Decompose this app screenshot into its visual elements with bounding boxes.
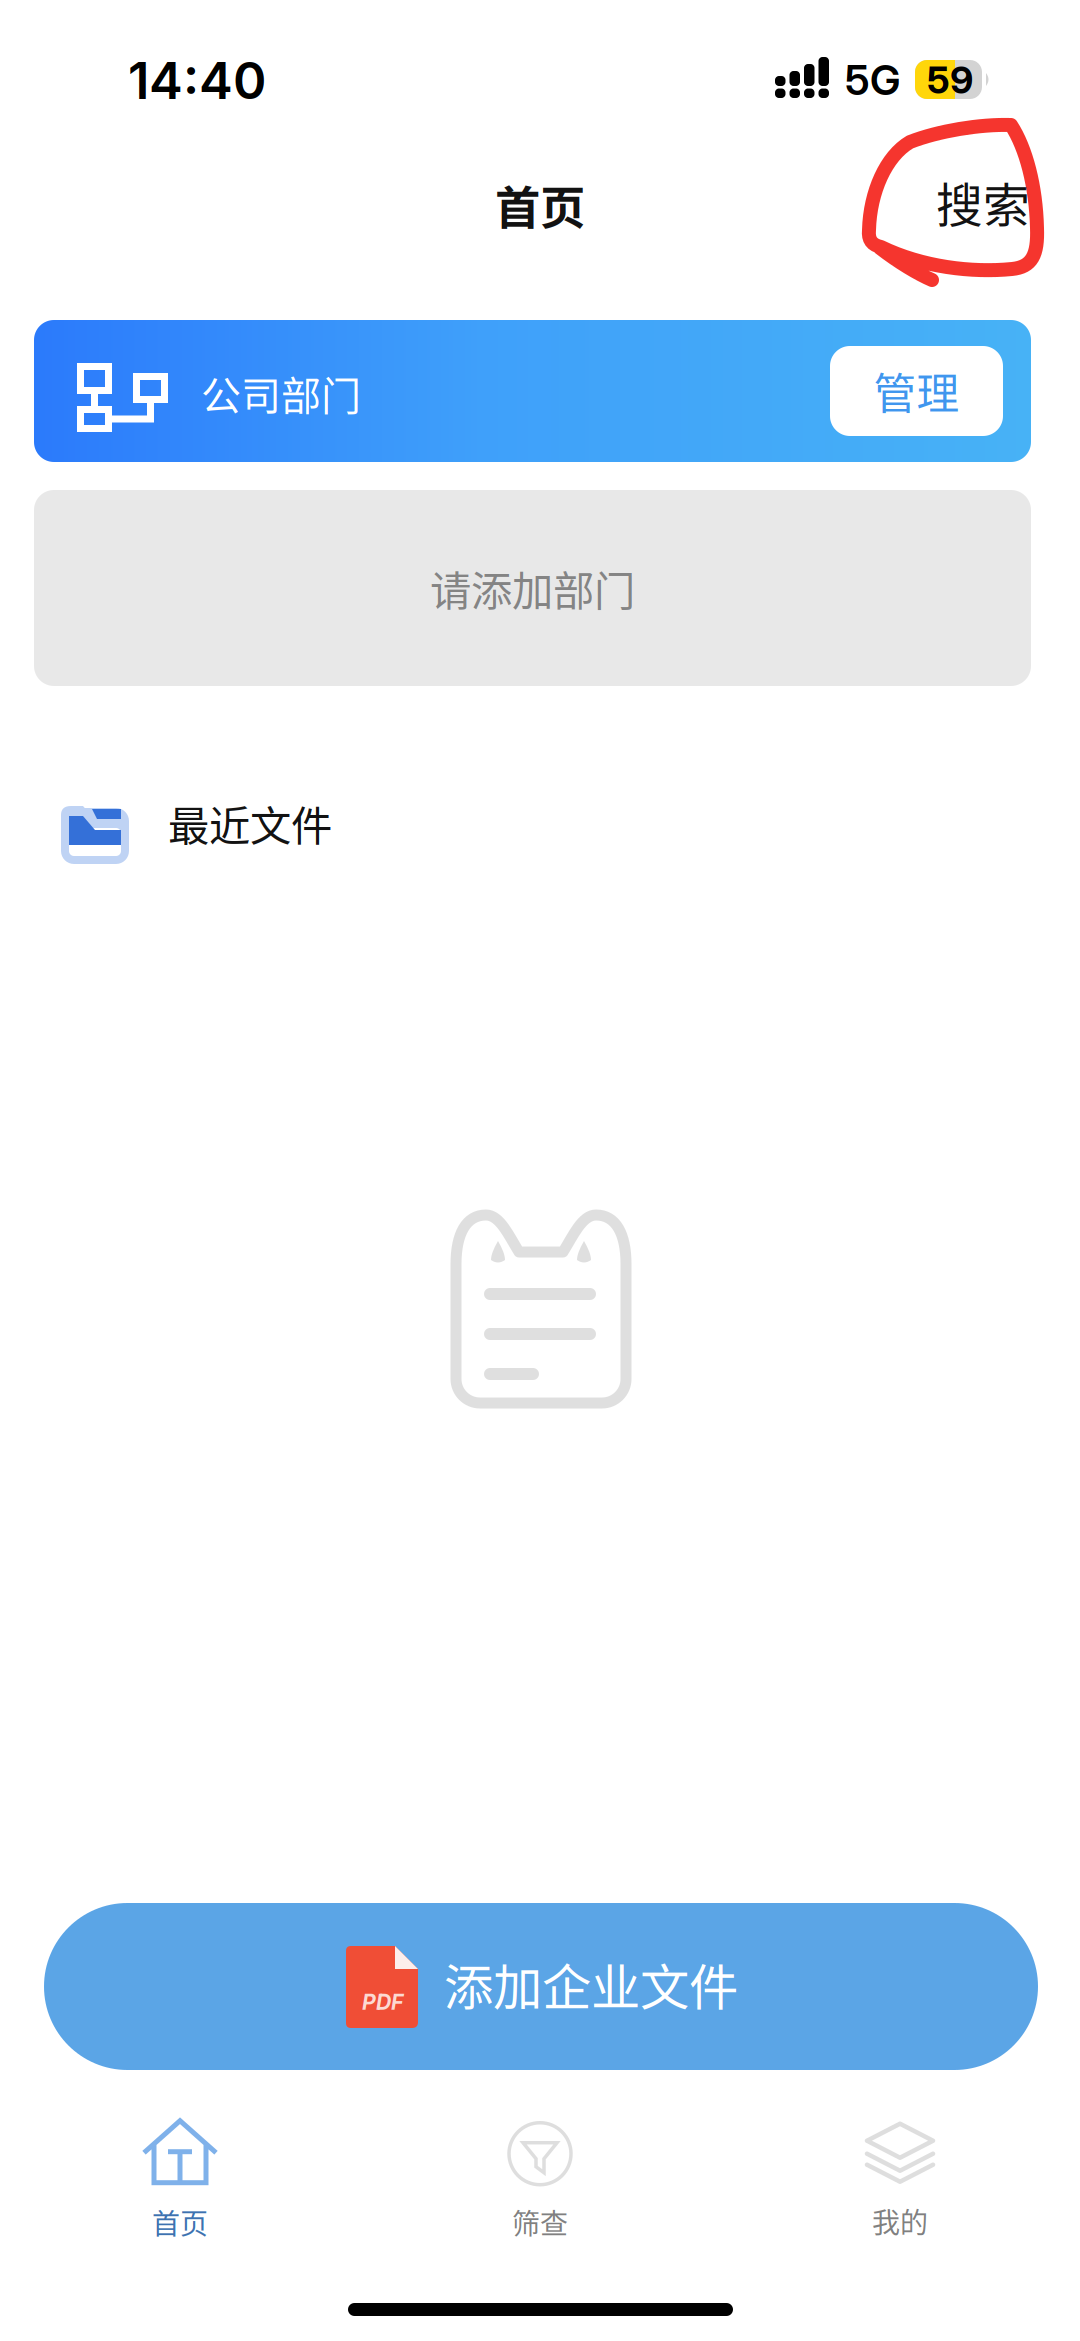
staticText: 添加企业文件 — [444, 1948, 738, 2019]
button[interactable]: 首页 — [0, 2110, 360, 2250]
button[interactable]: 添加企业文件 — [44, 1903, 1038, 2070]
staticText: 我的 — [872, 2201, 928, 2241]
staticText: 首页 — [152, 2202, 208, 2242]
staticText: 首页 — [495, 172, 585, 238]
button[interactable]: 管理 — [830, 346, 1003, 436]
button[interactable]: 最近文件 — [61, 786, 441, 860]
staticText: 搜索 — [936, 168, 1030, 236]
staticText: 筛查 — [512, 2202, 568, 2242]
staticText: 59 — [927, 57, 973, 103]
staticText: 请添加部门 — [430, 558, 635, 618]
button[interactable]: 我的 — [720, 2110, 1080, 2250]
staticText: 14:40 — [128, 50, 266, 111]
staticText: 管理 — [873, 360, 959, 422]
staticText: PDF — [362, 1989, 404, 2015]
staticText: 公司部门 — [201, 364, 361, 422]
staticText: 最近文件 — [168, 793, 332, 853]
button[interactable]: 搜索 — [860, 112, 1045, 290]
staticText: 5G — [845, 55, 900, 105]
button[interactable]: 筛查 — [360, 2110, 720, 2250]
